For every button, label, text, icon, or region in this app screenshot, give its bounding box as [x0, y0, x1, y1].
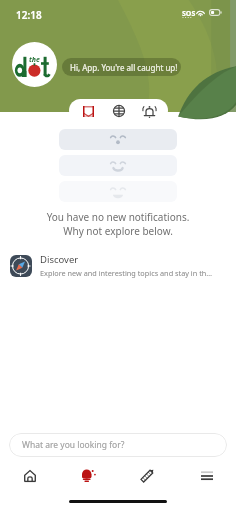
button[interactable]: Ideas	[59, 462, 118, 489]
button[interactable]: Menu	[177, 462, 236, 489]
staticText: 12:18	[16, 8, 42, 22]
staticText: Why not explore below.	[0, 224, 236, 238]
staticText: You have no new notifications.	[0, 210, 236, 224]
button[interactable]: Home	[0, 462, 59, 489]
button[interactable]: Compose	[118, 462, 177, 489]
button[interactable]: What are you looking for?	[9, 433, 227, 457]
staticText: Discover	[40, 253, 79, 266]
button[interactable]: Notifications	[138, 100, 160, 122]
staticText: Hi, App. You're all caught up!	[70, 62, 178, 73]
button[interactable]: Inbox	[77, 100, 99, 122]
button[interactable]: Discover	[0, 250, 236, 281]
button[interactable]: Explore	[108, 100, 130, 122]
staticText: SOS	[182, 9, 196, 19]
staticText: Explore new and interesting topics and s…	[40, 268, 213, 278]
staticText: What are you looking for?	[22, 439, 125, 451]
staticText: the	[29, 55, 40, 65]
